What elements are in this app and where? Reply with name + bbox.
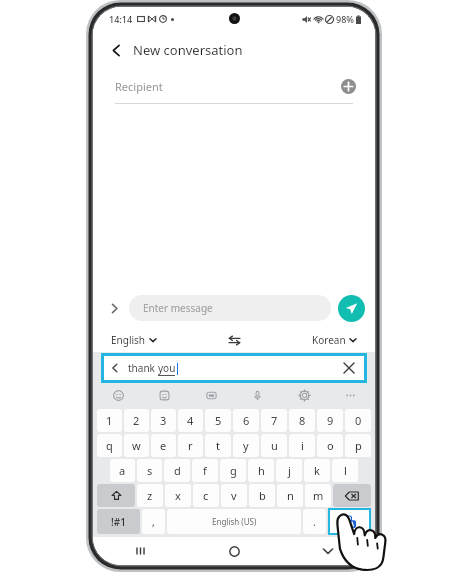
button[interactable]: w <box>124 434 149 457</box>
staticText: 2 <box>133 413 140 428</box>
button[interactable]: Shift <box>97 484 135 507</box>
staticText: English <box>111 333 146 347</box>
button[interactable]: Expand options <box>103 297 125 319</box>
staticText: English (US) <box>212 516 257 527</box>
button[interactable]: 6 <box>233 409 259 432</box>
staticText: 0 <box>355 413 362 428</box>
button[interactable]: b <box>249 484 275 507</box>
button[interactable]: r <box>178 434 203 457</box>
button[interactable]: t <box>205 434 231 457</box>
staticText: p <box>355 438 362 453</box>
staticText: Korean <box>312 333 346 347</box>
staticText: . <box>313 515 316 529</box>
button[interactable]: Recent apps <box>93 537 187 565</box>
button[interactable]: m <box>305 484 331 507</box>
button[interactable]: Stickers <box>155 386 173 404</box>
button[interactable]: g <box>220 459 246 482</box>
staticText: 6 <box>243 413 250 428</box>
staticText: 1 <box>106 413 113 428</box>
staticText: Recipient <box>115 79 163 94</box>
button[interactable]: p <box>345 434 371 457</box>
button[interactable]: Enter message <box>129 295 331 321</box>
staticText: s <box>147 463 153 478</box>
button[interactable]: GIF keyboard <box>202 386 220 404</box>
staticText: f <box>203 463 207 478</box>
staticText: y <box>243 438 249 453</box>
staticText: q <box>106 438 113 453</box>
button[interactable]: d <box>164 459 190 482</box>
button[interactable]: thank <box>104 356 364 380</box>
button[interactable]: q <box>97 434 122 457</box>
button[interactable]: 5 <box>205 409 231 432</box>
staticText: e <box>160 438 167 453</box>
button[interactable]: !#1 <box>97 509 140 534</box>
button[interactable]: English (US) <box>167 509 301 534</box>
button[interactable]: Keyboard settings <box>295 386 313 404</box>
button[interactable]: Send <box>338 295 365 322</box>
staticText: x <box>175 488 181 503</box>
button[interactable]: 7 <box>261 409 287 432</box>
staticText: 98% <box>336 13 354 25</box>
button[interactable]: c <box>193 484 219 507</box>
button[interactable]: k <box>304 459 330 482</box>
button[interactable]: 8 <box>289 409 315 432</box>
button[interactable]: l <box>332 459 358 482</box>
button[interactable]: , <box>142 509 165 534</box>
button[interactable]: z <box>137 484 163 507</box>
button[interactable]: Home <box>187 537 281 565</box>
button[interactable]: 1 <box>97 409 122 432</box>
button[interactable]: u <box>261 434 287 457</box>
button[interactable]: English <box>111 333 157 347</box>
button[interactable]: 0 <box>345 409 371 432</box>
staticText: v <box>231 488 237 503</box>
staticText: m <box>313 488 324 503</box>
staticText: h <box>258 463 265 478</box>
staticText: 7 <box>271 413 278 428</box>
staticText: you <box>158 361 176 375</box>
staticText: 9 <box>327 413 334 428</box>
button[interactable]: Voice input <box>248 386 266 404</box>
staticText: n <box>287 488 294 503</box>
staticText: u <box>271 438 278 453</box>
button[interactable]: 3 <box>151 409 176 432</box>
button[interactable]: Translate <box>330 510 369 533</box>
button[interactable]: f <box>192 459 218 482</box>
staticText: j <box>288 463 291 478</box>
button[interactable]: Back <box>101 35 131 65</box>
staticText: d <box>174 463 181 478</box>
button[interactable]: a <box>110 459 135 482</box>
button[interactable]: Korean <box>312 333 357 347</box>
staticText: k <box>314 463 320 478</box>
staticText: Enter message <box>143 301 213 315</box>
button[interactable]: s <box>137 459 162 482</box>
staticText: , <box>152 515 155 529</box>
button[interactable]: e <box>151 434 176 457</box>
button[interactable]: i <box>289 434 315 457</box>
staticText: 3 <box>160 413 167 428</box>
button[interactable]: x <box>165 484 191 507</box>
staticText: l <box>344 463 347 478</box>
button[interactable]: Hide keyboard <box>281 537 375 565</box>
button[interactable]: y <box>233 434 259 457</box>
staticText: 14:14 <box>109 13 133 25</box>
staticText: b <box>259 488 266 503</box>
button[interactable]: Emoji <box>109 386 127 404</box>
button[interactable]: 9 <box>317 409 343 432</box>
button[interactable]: Clear text <box>340 359 358 377</box>
button[interactable]: 4 <box>178 409 203 432</box>
button[interactable]: o <box>317 434 343 457</box>
button[interactable]: h <box>248 459 274 482</box>
staticText: g <box>230 463 237 478</box>
staticText: !#1 <box>111 515 126 529</box>
button[interactable]: 2 <box>124 409 149 432</box>
button[interactable]: More options <box>341 386 359 404</box>
button[interactable]: Add recipient <box>337 75 359 97</box>
button[interactable]: Backspace <box>333 484 371 507</box>
button[interactable]: Swap languages <box>223 330 245 350</box>
staticText: t <box>216 438 220 453</box>
button[interactable]: j <box>276 459 302 482</box>
button[interactable]: n <box>277 484 303 507</box>
button[interactable]: v <box>221 484 247 507</box>
staticText: o <box>327 438 334 453</box>
button[interactable]: . <box>303 509 326 534</box>
